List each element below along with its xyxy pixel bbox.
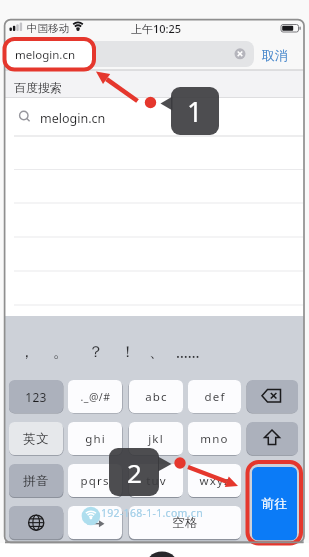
- button[interactable]: [247, 422, 298, 455]
- staticText: 。: [53, 342, 69, 362]
- button[interactable]: 空格: [129, 506, 241, 539]
- button[interactable]: mno: [188, 422, 241, 455]
- staticText: mno: [200, 431, 229, 447]
- button[interactable]: wxyz: [188, 464, 241, 497]
- staticText: 空格: [172, 515, 198, 531]
- staticText: 拼音: [23, 473, 49, 489]
- staticText: 英文: [23, 431, 49, 447]
- button[interactable]: abc: [129, 380, 183, 413]
- staticText: ，: [19, 342, 35, 362]
- staticText: melogin.cn: [40, 110, 106, 127]
- staticText: def: [204, 389, 226, 405]
- button[interactable]: 英文: [9, 422, 63, 455]
- staticText: 百度搜索: [14, 80, 62, 95]
- staticText: 上午10:25: [131, 21, 182, 36]
- button[interactable]: 拼音: [9, 464, 63, 497]
- button[interactable]: [68, 506, 122, 539]
- button[interactable]: [5, 40, 95, 70]
- staticText: 1: [187, 93, 203, 130]
- staticText: 、: [149, 342, 165, 362]
- button[interactable]: ghi: [68, 422, 122, 455]
- staticText: 123: [25, 389, 47, 405]
- staticText: ._@/#: [80, 390, 111, 404]
- staticText: ghi: [85, 431, 106, 447]
- staticText: 192-168-1-1.com.cn: [101, 506, 203, 520]
- button[interactable]: ._@/#: [68, 380, 122, 413]
- button[interactable]: [247, 380, 298, 413]
- staticText: 取消: [262, 47, 288, 63]
- staticText: tuv: [146, 473, 167, 489]
- button[interactable]: 123: [9, 380, 63, 413]
- staticText: melogin.cn: [15, 47, 76, 63]
- button[interactable]: pqrs: [68, 464, 122, 497]
- button[interactable]: 取消: [249, 42, 301, 67]
- button[interactable]: [5, 98, 304, 136]
- staticText: ？: [88, 342, 104, 362]
- button[interactable]: jkl: [129, 422, 183, 455]
- staticText: wxyz: [199, 473, 231, 489]
- staticText: 中国移动: [27, 22, 69, 35]
- button[interactable]: tuv: [129, 464, 183, 497]
- staticText: jkl: [148, 431, 164, 447]
- button[interactable]: def: [188, 380, 241, 413]
- staticText: ……: [176, 342, 200, 362]
- staticText: ！: [120, 342, 136, 362]
- button[interactable]: [9, 41, 254, 67]
- staticText: 前往: [261, 496, 288, 512]
- staticText: 2: [127, 455, 142, 490]
- button[interactable]: 前往: [252, 467, 297, 540]
- staticText: abc: [145, 389, 168, 405]
- staticText: pqrs: [80, 473, 110, 489]
- button[interactable]: [9, 506, 63, 539]
